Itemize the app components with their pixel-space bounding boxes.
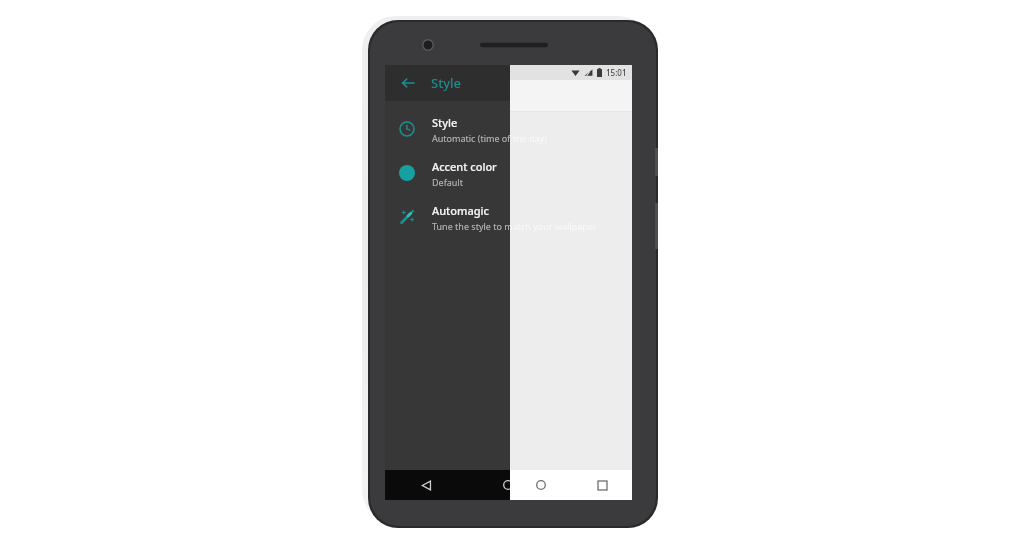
staticText: Accent color [432, 159, 497, 174]
button[interactable]: Home [493, 470, 523, 500]
button[interactable]: Back [411, 470, 441, 500]
staticText: Automatic (time of the day) [432, 132, 547, 144]
button[interactable]: Accent color [385, 151, 632, 195]
button[interactable]: Home [528, 472, 554, 498]
staticText: Style [432, 115, 458, 130]
staticText: Default [432, 176, 463, 188]
staticText: Automagic [432, 203, 489, 218]
button[interactable]: Back [395, 70, 421, 96]
button[interactable]: Recent apps [576, 470, 606, 500]
staticText: Style [431, 74, 461, 92]
button[interactable]: Recent apps [589, 472, 615, 498]
button[interactable]: Automagic [385, 195, 632, 239]
button[interactable]: Style [385, 107, 632, 151]
staticText: Tune the style to match your wallpaper [432, 220, 597, 232]
staticText: 15:01 [606, 67, 627, 78]
